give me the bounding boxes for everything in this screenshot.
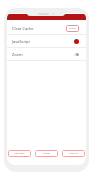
staticText: Zoom xyxy=(12,52,23,57)
button[interactable]: Zoom xyxy=(7,48,86,60)
button[interactable]: Clear Cache xyxy=(7,22,86,34)
button[interactable]: MINUTES xyxy=(8,150,31,157)
staticText: JavaScript xyxy=(12,39,30,44)
button[interactable]: SIGN UP xyxy=(62,150,85,157)
staticText: CLOSE xyxy=(69,27,76,30)
button[interactable]: CLOSE xyxy=(66,25,79,32)
button[interactable]: HOUR xyxy=(35,150,58,157)
staticText: SIGN UP xyxy=(69,152,79,155)
staticText: Clear Cache xyxy=(12,26,34,31)
staticText: MINUTES xyxy=(14,152,25,155)
button[interactable]: JavaScript xyxy=(7,35,86,47)
staticText: HOUR xyxy=(43,152,50,155)
